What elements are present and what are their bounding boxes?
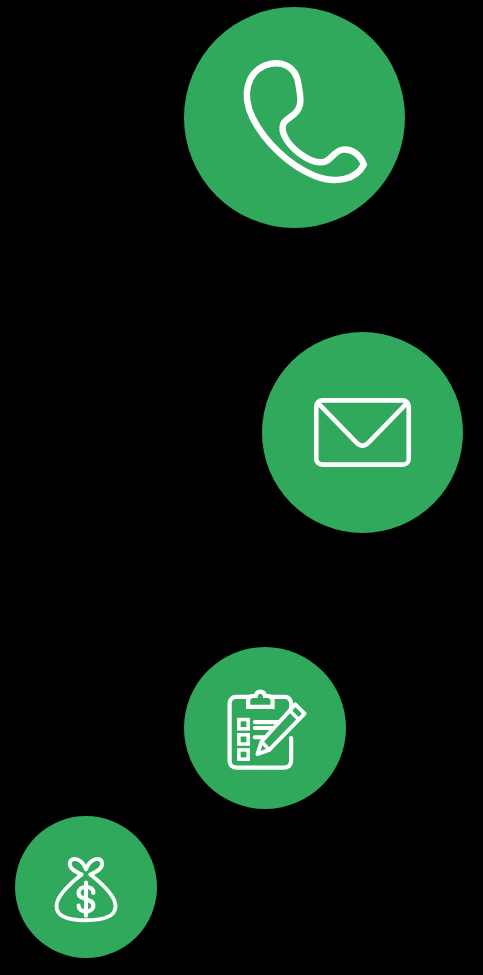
button[interactable]: Payments [15, 816, 157, 958]
button[interactable]: Email [262, 332, 463, 533]
button[interactable]: Call [184, 7, 405, 228]
button[interactable]: Tasks [184, 647, 346, 809]
